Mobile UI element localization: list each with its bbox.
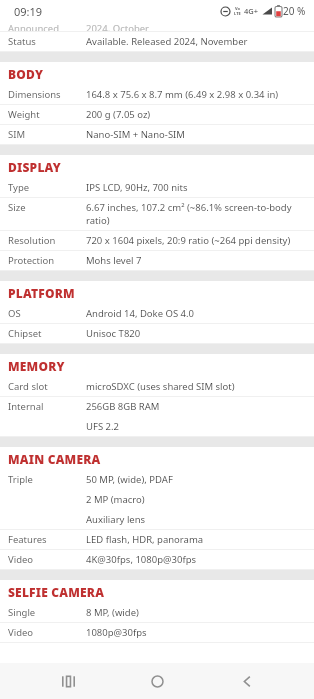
button[interactable]: Type [0,178,314,197]
staticText: 2024, October [86,22,150,31]
staticText: microSDXC (uses shared SIM slot) [86,380,235,393]
staticText: LTE [234,11,241,16]
staticText: 720 x 1604 pixels, 20:9 ratio (~264 ppi … [86,234,291,247]
button[interactable]: Recents [46,663,90,699]
button[interactable]: Video [0,550,314,569]
button[interactable]: Triple [0,470,314,529]
button[interactable]: Card slot [0,377,314,396]
staticText: Vo [235,6,241,11]
staticText: 4K@30fps, 1080p@30fps [86,553,197,566]
button[interactable]: Video [0,623,314,642]
button[interactable]: SIM [0,125,314,144]
staticText: Status [8,35,36,48]
button[interactable]: PLATFORM [0,281,314,304]
staticText: 20 % [283,4,306,18]
button[interactable]: Protection [0,251,314,270]
staticText: Internal [8,400,44,413]
staticText: 256GB 8GB RAM [86,400,160,413]
staticText: Dimensions [8,88,61,101]
staticText: SIM [8,128,26,141]
button[interactable]: Features [0,530,314,549]
staticText: Unisoc T820 [86,327,141,340]
button[interactable]: DISPLAY [0,155,314,178]
staticText: PLATFORM [8,285,75,301]
staticText: Nano-SIM + Nano-SIM [86,128,185,141]
staticText: 200 g (7.05 oz) [86,108,151,121]
staticText: Video [8,626,34,639]
staticText: Card slot [8,380,48,393]
staticText: IPS LCD, 90Hz, 700 nits [86,181,188,194]
staticText: MAIN CAMERA [8,451,101,467]
button[interactable]: Chipset [0,324,314,343]
staticText: 6.67 inches, 107.2 cm² (~86.1% screen-to… [86,201,306,227]
button[interactable]: Status [0,32,314,51]
staticText: Mohs level 7 [86,254,142,267]
staticText: DISPLAY [8,159,61,175]
staticText: 8 MP, (wide) [86,606,139,619]
staticText: OS [8,307,21,320]
staticText: Size [8,201,26,214]
button[interactable]: Size [0,198,314,230]
button[interactable]: Resolution [0,231,314,250]
button[interactable]: Home [135,663,179,699]
staticText: Protection [8,254,55,267]
staticText: Video [8,553,34,566]
staticText: 09:19 [14,4,43,19]
button[interactable]: Dimensions [0,85,314,104]
staticText: BODY [8,66,44,82]
staticText: Single [8,606,36,619]
staticText: Weight [8,108,40,121]
staticText: UFS 2.2 [86,420,119,433]
staticText: Resolution [8,234,56,247]
staticText: Features [8,533,47,546]
button[interactable]: SELFIE CAMERA [0,580,314,603]
button[interactable]: MEMORY [0,354,314,377]
staticText: SELFIE CAMERA [8,584,105,600]
staticText: LED flash, HDR, panorama [86,533,204,546]
button[interactable]: OS [0,304,314,323]
button[interactable]: Single [0,603,314,622]
other: Do not disturb [220,6,231,17]
staticText: 164.8 x 75.6 x 8.7 mm (6.49 x 2.98 x 0.3… [86,88,279,101]
staticText: Triple [8,473,33,486]
button[interactable]: Internal [0,397,314,436]
button[interactable]: Back [225,663,269,699]
staticText: Available. Released 2024, November [86,35,248,48]
staticText: 2 MP (macro) [86,493,145,506]
staticText: Android 14, Doke OS 4.0 [86,307,195,320]
staticText: 50 MP, (wide), PDAF [86,473,173,486]
staticText: Auxiliary lens [86,513,146,526]
staticText: MEMORY [8,358,65,374]
button[interactable]: Weight [0,105,314,124]
staticText: 1080p@30fps [86,626,147,639]
staticText: Chipset [8,327,42,340]
button[interactable]: BODY [0,62,314,85]
button[interactable]: MAIN CAMERA [0,447,314,470]
staticText: 4G+ [244,6,259,16]
staticText: Announced [8,22,60,31]
staticText: Type [8,181,30,194]
